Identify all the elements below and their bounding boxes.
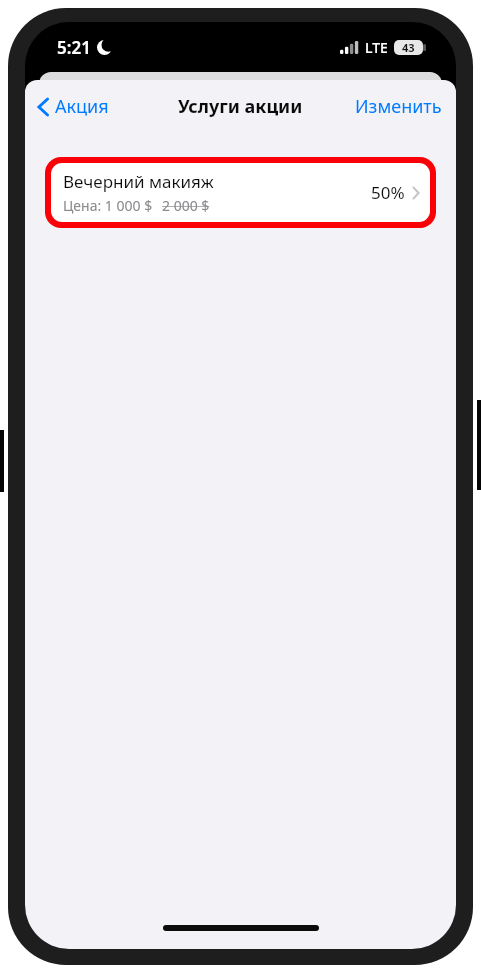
button[interactable]: Изменить [345,88,456,125]
staticText: 43 [402,40,415,55]
staticText: Изменить [355,94,442,119]
staticText: Вечерний макияж [63,170,214,193]
button[interactable]: Вечерний макияж [45,157,436,228]
staticText: 50% [371,181,405,204]
button[interactable]: Акция [25,88,119,125]
staticText: Услуги акции [178,94,303,119]
staticText: Цена: 1 000 $ [63,196,153,215]
staticText: 5:21 [57,36,91,59]
staticText: LTE [365,38,388,57]
staticText: Акция [55,94,109,119]
staticText: 2 000 $ [162,196,210,215]
